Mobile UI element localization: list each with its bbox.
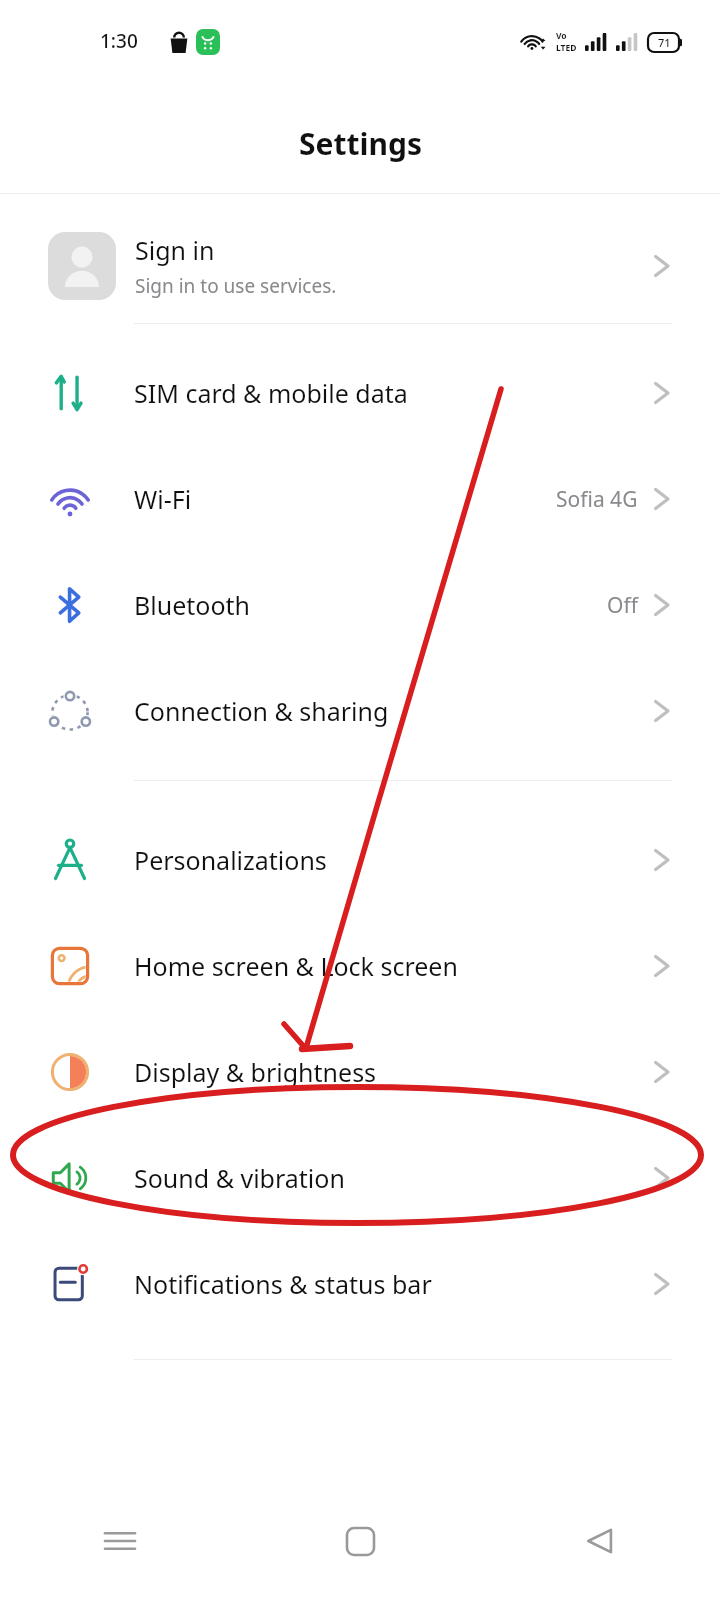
button[interactable]: Wi-Fi: [0, 446, 720, 552]
staticText: Home screen & Lock screen: [134, 949, 652, 983]
staticText: Sofia 4G: [556, 485, 638, 514]
staticText: Wi-Fi: [134, 482, 556, 516]
staticText: Sign in to use services.: [135, 273, 337, 299]
button[interactable]: Home: [240, 1482, 480, 1600]
button[interactable]: Back: [480, 1482, 720, 1600]
staticText: Personalizations: [134, 843, 652, 877]
staticText: Sign in: [135, 233, 215, 267]
button[interactable]: Sound & vibration: [0, 1125, 720, 1231]
button[interactable]: SIM card & mobile data: [0, 340, 720, 446]
staticText: Bluetooth: [134, 588, 607, 622]
staticText: 1:30: [100, 28, 138, 54]
staticText: Display & brightness: [134, 1055, 652, 1089]
button[interactable]: Personalizations: [0, 807, 720, 913]
staticText: Off: [607, 591, 638, 620]
button[interactable]: Bluetooth: [0, 552, 720, 658]
button[interactable]: Home screen & Lock screen: [0, 913, 720, 1019]
staticText: 71: [658, 35, 671, 50]
button[interactable]: Connection & sharing: [0, 658, 720, 764]
button[interactable]: Display & brightness: [0, 1019, 720, 1125]
staticText: Connection & sharing: [134, 694, 652, 728]
staticText: Sound & vibration: [134, 1161, 652, 1195]
button[interactable]: Sign in: [0, 222, 720, 310]
button[interactable]: Notifications & status bar: [0, 1231, 720, 1337]
staticText: Vo: [556, 30, 567, 42]
staticText: Notifications & status bar: [134, 1267, 652, 1301]
staticText: SIM card & mobile data: [134, 376, 652, 410]
staticText: Settings: [299, 123, 422, 164]
button[interactable]: Recents: [0, 1482, 240, 1600]
staticText: LTED: [556, 42, 577, 54]
